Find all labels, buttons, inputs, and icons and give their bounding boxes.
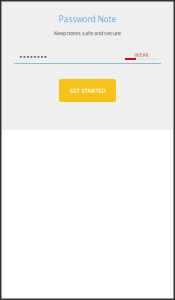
button[interactable]: GET STARTED bbox=[59, 79, 116, 102]
staticText: GET STARTED bbox=[69, 86, 105, 95]
staticText: Keep notes safe and secure bbox=[54, 29, 121, 37]
staticText: Password Note bbox=[58, 13, 116, 25]
staticText: WEAK bbox=[134, 52, 148, 58]
